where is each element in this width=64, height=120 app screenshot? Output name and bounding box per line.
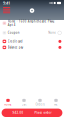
staticText: Home [4, 103, 12, 106]
button[interactable]: Balance pay [0, 44, 64, 50]
staticText: 9:41 [3, 0, 10, 6]
staticText: Place order [34, 111, 51, 114]
button[interactable]: Coupon [0, 30, 64, 36]
staticText: Home · 1600 Amphitheatre Pkwy, Apt 4 [8, 20, 55, 27]
staticText: None [48, 31, 56, 34]
button[interactable]: Orders [32, 97, 48, 109]
button[interactable]: Credit card [0, 38, 64, 44]
button[interactable]: Profile [29, 8, 35, 14]
staticText: Balance pay [8, 46, 23, 49]
button[interactable]: Home [0, 97, 16, 109]
staticText: Cart [21, 103, 26, 106]
staticText: Me [54, 103, 58, 106]
staticText: Credit card [8, 40, 23, 43]
staticText: Orders [35, 103, 44, 106]
button[interactable]: Cart [16, 97, 32, 109]
button[interactable]: $42.00 [2, 109, 62, 117]
button[interactable]: Me [48, 97, 64, 109]
staticText: Coupon [8, 31, 20, 34]
staticText: $42.00 [12, 111, 23, 114]
button[interactable]: Home · 1600 Amphitheatre Pkwy, Apt 4 [0, 20, 64, 26]
